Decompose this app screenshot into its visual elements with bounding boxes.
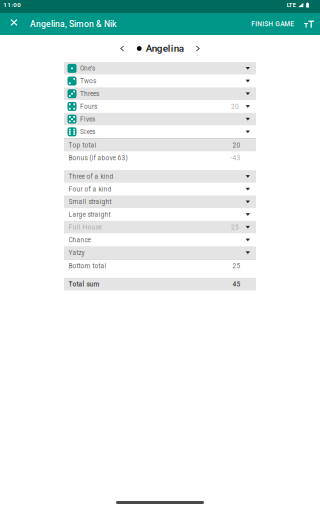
staticText: Total sum xyxy=(69,280,100,288)
staticText: Top total xyxy=(69,141,97,149)
button[interactable]: Chance xyxy=(64,234,256,246)
button[interactable]: Fives xyxy=(64,113,256,125)
staticText: Small straight xyxy=(69,198,112,206)
button[interactable]: Small straight xyxy=(64,195,256,208)
staticText: Four of a kind xyxy=(69,185,112,193)
button[interactable]: Close xyxy=(0,14,28,34)
staticText: Twos xyxy=(80,77,96,85)
staticText: 25 xyxy=(232,262,240,270)
button[interactable]: FINISH GAME xyxy=(247,14,298,34)
button[interactable]: Large straight xyxy=(64,208,256,221)
staticText: One's xyxy=(80,64,95,72)
staticText: Bonus (if above 63) xyxy=(69,154,128,162)
staticText: Angelina, Simon & Nik xyxy=(30,19,117,29)
staticText: Full House xyxy=(69,223,102,231)
staticText: Fives xyxy=(80,115,95,123)
staticText: Yatzy xyxy=(69,249,85,256)
button[interactable]: Full House xyxy=(64,221,256,234)
staticText: Large straight xyxy=(69,211,111,218)
button[interactable]: One's xyxy=(64,62,256,75)
staticText: 11:00 xyxy=(3,1,21,9)
button[interactable]: Previous player xyxy=(113,37,137,60)
staticText: 20 xyxy=(231,103,239,110)
button[interactable]: Yatzy xyxy=(64,246,256,259)
staticText: Threes xyxy=(80,90,99,98)
button[interactable]: Fours xyxy=(64,100,256,113)
button[interactable]: Threes xyxy=(64,87,256,100)
staticText: Fours xyxy=(80,103,97,110)
button[interactable]: Next player xyxy=(184,37,206,60)
staticText: Angelina xyxy=(146,43,184,54)
staticText: 20 xyxy=(232,141,240,149)
staticText: Bottom total xyxy=(69,262,107,270)
staticText: 25 xyxy=(231,223,239,231)
button[interactable]: Text size xyxy=(298,14,320,34)
button[interactable]: Three of a kind xyxy=(64,170,256,183)
staticText: Chance xyxy=(69,236,91,244)
staticText: Sixes xyxy=(80,128,95,136)
button[interactable]: Four of a kind xyxy=(64,183,256,195)
staticText: -43 xyxy=(230,154,240,162)
button[interactable]: Twos xyxy=(64,75,256,87)
staticText: Three of a kind xyxy=(69,173,114,180)
button[interactable]: Sixes xyxy=(64,125,256,138)
staticText: LTE xyxy=(287,2,296,8)
staticText: FINISH GAME xyxy=(251,20,294,28)
staticText: 45 xyxy=(232,280,240,288)
